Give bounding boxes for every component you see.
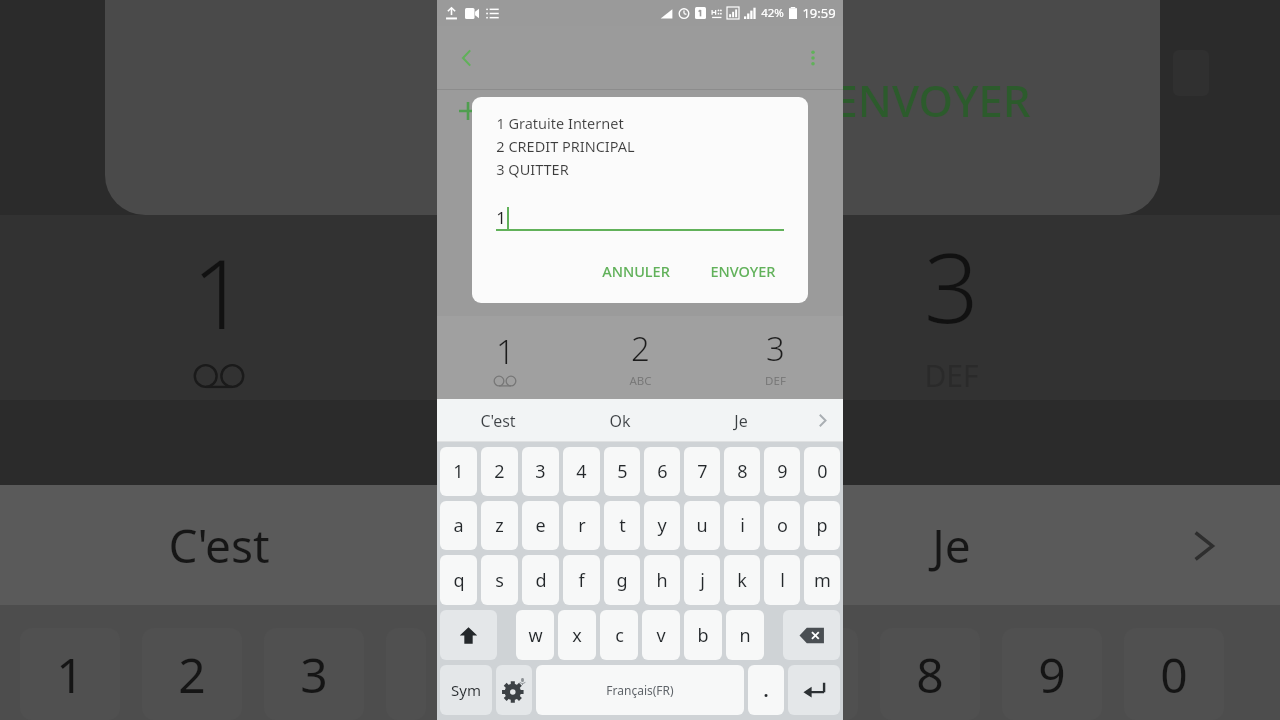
staticText: 3 bbox=[766, 326, 785, 371]
staticText: 3 QUITTER bbox=[496, 159, 569, 179]
button[interactable]: 1 bbox=[440, 447, 477, 496]
button[interactable]: Sym bbox=[440, 665, 492, 715]
button[interactable]: 0 bbox=[804, 447, 840, 496]
staticText: 1 bbox=[453, 459, 464, 484]
button[interactable]: x bbox=[558, 610, 596, 660]
button[interactable]: 5 bbox=[604, 447, 640, 496]
button[interactable]: 7 bbox=[684, 447, 720, 496]
staticText: 1 bbox=[192, 226, 247, 357]
staticText: 9 bbox=[777, 459, 788, 484]
button[interactable]: ENVOYER bbox=[702, 253, 784, 289]
button[interactable]: Add contact bbox=[449, 92, 487, 130]
button[interactable]: r bbox=[563, 501, 600, 550]
button[interactable]: 2 bbox=[573, 316, 708, 399]
staticText: q bbox=[453, 568, 465, 593]
button[interactable]: b bbox=[684, 610, 722, 660]
button[interactable]: Backspace bbox=[783, 610, 840, 660]
staticText: d bbox=[535, 568, 547, 593]
button[interactable]: y bbox=[644, 501, 680, 550]
button[interactable]: Je bbox=[680, 399, 801, 442]
button[interactable]: m bbox=[804, 555, 840, 605]
staticText: r bbox=[578, 513, 586, 538]
button[interactable]: f bbox=[563, 555, 600, 605]
staticText: C'est bbox=[480, 410, 516, 432]
button[interactable]: o bbox=[764, 501, 800, 550]
staticText: 6 bbox=[657, 459, 668, 484]
button[interactable]: 8 bbox=[724, 447, 760, 496]
staticText: 4 bbox=[576, 459, 587, 484]
staticText: Sym bbox=[451, 680, 481, 700]
staticText: 1 bbox=[496, 329, 515, 374]
button[interactable]: 6 bbox=[644, 447, 680, 496]
button[interactable]: l bbox=[764, 555, 800, 605]
button[interactable]: u bbox=[684, 501, 720, 550]
button[interactable]: Keyboard settings bbox=[496, 665, 532, 715]
staticText: j bbox=[700, 568, 705, 593]
staticText: n bbox=[739, 623, 751, 648]
button[interactable]: Shift bbox=[440, 610, 497, 660]
button[interactable]: e bbox=[522, 501, 559, 550]
button[interactable]: g bbox=[604, 555, 640, 605]
staticText: h bbox=[656, 568, 668, 593]
staticText: 2 CREDIT PRINCIPAL bbox=[496, 136, 635, 156]
staticText: t bbox=[619, 513, 626, 538]
staticText: Je bbox=[734, 410, 748, 432]
button[interactable]: z bbox=[481, 501, 518, 550]
staticText: ABC bbox=[629, 373, 652, 389]
staticText: 2 bbox=[631, 326, 650, 371]
staticText: o bbox=[777, 513, 788, 538]
button[interactable]: 3 bbox=[708, 316, 843, 399]
button[interactable]: p bbox=[804, 501, 840, 550]
button[interactable]: t bbox=[604, 501, 640, 550]
button[interactable]: v bbox=[642, 610, 680, 660]
button[interactable]: w bbox=[516, 610, 554, 660]
staticText: ENVOYER bbox=[710, 261, 776, 281]
button[interactable]: c bbox=[600, 610, 638, 660]
button[interactable]: Back bbox=[445, 36, 489, 80]
button[interactable]: j bbox=[684, 555, 720, 605]
button[interactable]: a bbox=[440, 501, 477, 550]
button[interactable]: Enter bbox=[788, 665, 840, 715]
staticText: u bbox=[696, 513, 708, 538]
staticText: v bbox=[656, 623, 666, 648]
staticText: 3 bbox=[300, 642, 328, 707]
button[interactable]: 1 bbox=[437, 316, 573, 399]
staticText: 2 bbox=[494, 459, 505, 484]
button[interactable]: . bbox=[748, 665, 784, 715]
button[interactable]: 3 bbox=[522, 447, 559, 496]
staticText: s bbox=[495, 568, 504, 593]
button[interactable]: q bbox=[440, 555, 477, 605]
button[interactable]: More suggestions bbox=[801, 399, 843, 442]
button[interactable]: ANNULER bbox=[594, 253, 678, 289]
staticText: 1 bbox=[496, 206, 506, 229]
staticText: b bbox=[697, 623, 709, 648]
staticText: 8 bbox=[916, 642, 944, 707]
staticText: e bbox=[535, 513, 546, 538]
button[interactable]: 4 bbox=[563, 447, 600, 496]
button[interactable]: i bbox=[724, 501, 760, 550]
staticText: Ok bbox=[609, 410, 631, 432]
button[interactable]: C'est bbox=[437, 399, 559, 442]
staticText: 1 bbox=[56, 642, 84, 707]
staticText: ANNULER bbox=[602, 261, 670, 281]
button[interactable]: Ok bbox=[559, 399, 680, 442]
button[interactable]: d bbox=[522, 555, 559, 605]
button[interactable]: Français(FR) bbox=[536, 665, 744, 715]
staticText: l bbox=[780, 568, 785, 593]
staticText: 9 bbox=[1038, 642, 1066, 707]
staticText: i bbox=[740, 513, 745, 538]
staticText: m bbox=[814, 568, 831, 593]
button[interactable]: n bbox=[726, 610, 764, 660]
button[interactable]: More options bbox=[791, 36, 835, 80]
button[interactable]: k bbox=[724, 555, 760, 605]
button[interactable]: s bbox=[481, 555, 518, 605]
staticText: w bbox=[528, 623, 543, 648]
button[interactable]: h bbox=[644, 555, 680, 605]
button[interactable]: 2 bbox=[481, 447, 518, 496]
button[interactable]: 9 bbox=[764, 447, 800, 496]
staticText: DEF bbox=[765, 373, 786, 389]
staticText: 5 bbox=[617, 459, 628, 484]
staticText: a bbox=[453, 513, 464, 538]
staticText: f bbox=[578, 568, 585, 593]
